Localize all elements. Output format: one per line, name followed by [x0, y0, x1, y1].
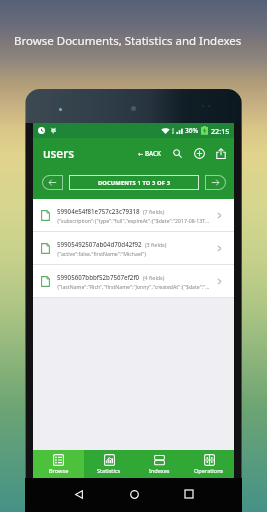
- staticText: users: [43, 145, 75, 161]
- button[interactable]: Indexes: [134, 450, 184, 478]
- button[interactable]: Next page: [205, 175, 226, 190]
- button[interactable]: Back: [67, 482, 91, 506]
- staticText: 59904e54f81e757c23c79318: [57, 207, 140, 215]
- staticText: {"active":false,"firstName":"Michael"}: [57, 250, 147, 257]
- staticText: Browse: [49, 467, 69, 475]
- button[interactable]: 59904e54f81e757c23c79318: [33, 199, 234, 232]
- button[interactable]: DOCUMENTS 1 TO 3 OF 3: [69, 175, 199, 190]
- button[interactable]: Statistics: [84, 450, 134, 478]
- staticText: Statistics: [97, 467, 121, 475]
- staticText: Indexes: [149, 467, 170, 475]
- staticText: 59905607bbbf52b7567ef2f0: [57, 273, 140, 281]
- staticText: Browse Documents, Statistics and Indexes: [14, 33, 242, 49]
- button[interactable]: Home: [122, 482, 146, 506]
- button[interactable]: Add document: [191, 145, 207, 161]
- button[interactable]: Operations: [184, 450, 234, 478]
- staticText: ← BACK: [138, 149, 162, 158]
- staticText: 36%: [185, 126, 199, 135]
- staticText: (7 fields): [143, 208, 165, 215]
- button[interactable]: Search: [169, 145, 185, 161]
- staticText: 59905492507ab04d70d42f92: [57, 240, 142, 248]
- button[interactable]: Share: [213, 145, 229, 161]
- button[interactable]: 59905607bbbf52b7567ef2f0: [33, 265, 234, 298]
- staticText: Operations: [194, 467, 224, 475]
- button[interactable]: Browse: [33, 450, 84, 478]
- staticText: DOCUMENTS 1 TO 3 OF 3: [98, 179, 171, 187]
- button[interactable]: Recent apps: [177, 482, 201, 506]
- staticText: (4 fields): [143, 274, 165, 281]
- staticText: {"lastName":"Rich","firstName":"Jonny","…: [57, 283, 211, 290]
- button[interactable]: ← BACK: [137, 142, 163, 164]
- staticText: 22:15: [211, 126, 230, 136]
- button[interactable]: Previous page: [42, 175, 63, 190]
- staticText: (3 fields): [145, 241, 167, 248]
- button[interactable]: 59905492507ab04d70d42f92: [33, 232, 234, 265]
- staticText: {"subscription":{"type":"full","expireAt…: [57, 217, 211, 224]
